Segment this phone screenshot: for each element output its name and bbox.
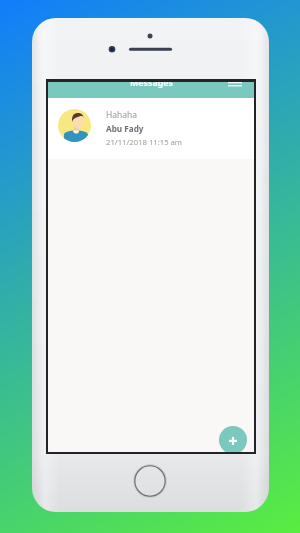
staticText: Abu Fady: [106, 123, 144, 134]
staticText: Hahaha: [106, 109, 138, 121]
button[interactable]: Hahaha: [48, 98, 254, 159]
staticText: Messages: [130, 82, 173, 89]
button[interactable]: Menu: [228, 82, 242, 90]
staticText: 21/11/2018 11:15 am: [106, 137, 183, 147]
button[interactable]: New message: [219, 426, 247, 452]
